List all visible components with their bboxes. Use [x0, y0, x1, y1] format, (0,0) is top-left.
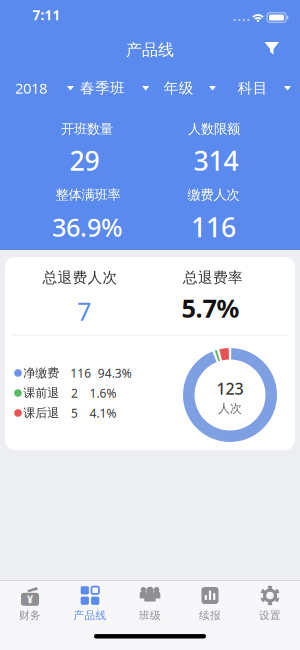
staticText: 净缴费 — [23, 366, 59, 380]
button[interactable]: 科目 — [225, 73, 300, 103]
staticText: 整体满班率 — [55, 186, 120, 203]
button[interactable]: 筛选 — [258, 36, 286, 60]
staticText: 2 — [71, 385, 78, 401]
staticText: 314 — [193, 143, 238, 178]
staticText: 课前退 — [23, 386, 59, 400]
staticText: 开班数量 — [61, 121, 113, 137]
staticText: 科目 — [238, 79, 268, 97]
staticText: 2018 — [15, 78, 47, 98]
staticText: 产品线 — [73, 609, 106, 622]
staticText: 班级 — [139, 609, 161, 622]
button[interactable]: 设置 — [240, 582, 300, 626]
button[interactable]: 续报 — [180, 582, 240, 626]
staticText: 7:11 — [32, 6, 60, 24]
staticText: 设置 — [259, 609, 281, 622]
button[interactable]: 春季班 — [75, 73, 150, 103]
staticText: 116 — [191, 209, 236, 245]
staticText: 续报 — [199, 609, 221, 622]
staticText: 人数限额 — [188, 121, 240, 137]
staticText: 春季班 — [80, 79, 125, 97]
button[interactable]: 年级 — [150, 73, 225, 103]
staticText: 财务 — [19, 609, 41, 622]
staticText: 年级 — [164, 79, 194, 97]
staticText: 7 — [77, 294, 91, 328]
staticText: 5 — [71, 405, 78, 421]
staticText: 94.3% — [98, 365, 132, 381]
staticText: 总退费人次 — [42, 268, 117, 286]
staticText: 4.1% — [89, 405, 116, 421]
staticText: 总退费率 — [183, 268, 243, 286]
button[interactable]: 2018 — [0, 73, 75, 103]
staticText: 36.9% — [52, 210, 123, 244]
staticText: 人次 — [218, 401, 242, 416]
button[interactable]: ¥ — [0, 582, 60, 626]
staticText: 课后退 — [23, 406, 59, 420]
staticText: 123 — [216, 378, 243, 399]
staticText: 产品线 — [126, 40, 174, 60]
staticText: 缴费人次 — [187, 186, 239, 203]
button[interactable]: 班级 — [120, 582, 180, 626]
staticText: 5.7% — [181, 291, 239, 325]
staticText: 116 — [70, 365, 91, 381]
staticText: 29 — [69, 143, 99, 178]
button[interactable]: 产品线 — [60, 582, 120, 626]
staticText: ¥ — [27, 592, 33, 606]
staticText: 1.6% — [89, 385, 116, 401]
